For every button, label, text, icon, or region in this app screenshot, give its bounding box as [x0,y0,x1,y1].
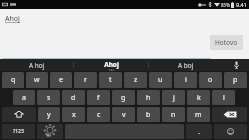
staticText: f [97,93,100,103]
staticText: n [171,110,176,120]
button[interactable]: n [162,107,185,122]
button[interactable]: k [187,90,210,105]
button[interactable]: ?123 [2,124,35,139]
staticText: k [197,93,201,103]
staticText: Hotovo [215,38,238,47]
staticText: Ahoj [5,14,20,24]
button[interactable]: w [26,72,48,88]
staticText: y [47,110,51,120]
button[interactable]: m [187,107,210,122]
button[interactable]: Ahoj [74,59,148,71]
staticText: h [146,93,151,103]
button[interactable]: v [112,107,135,122]
button[interactable]: Emoji [214,124,247,139]
button[interactable]: o [199,72,222,88]
staticText: z [134,75,138,85]
button[interactable]: p [224,72,247,88]
staticText: ?123 [13,128,24,135]
button[interactable]: s [37,90,60,105]
button[interactable]: q [2,72,24,88]
button[interactable]: Settings and comma [37,124,63,139]
staticText: r [84,75,87,85]
staticText: q [11,75,16,85]
staticText: 85% [221,2,230,8]
button[interactable]: e [50,72,72,88]
staticText: d [71,93,76,103]
staticText: t [109,75,112,85]
button[interactable]: Hotovo [210,35,243,50]
button[interactable]: A boj [149,59,223,71]
button[interactable]: Voice input [223,59,249,71]
button[interactable]: z [124,72,147,88]
staticText: A hoj [29,61,45,70]
staticText: g [121,93,126,103]
staticText: u [158,75,163,85]
button[interactable]: a [13,90,35,105]
button[interactable]: c [87,107,110,122]
button[interactable]: x [62,107,85,122]
button[interactable]: f [87,90,110,105]
button[interactable]: l [212,90,235,105]
staticText: A boj [178,61,194,70]
staticText: w [34,75,40,85]
staticText: m [195,110,202,120]
button[interactable]: u [149,72,172,88]
button[interactable]: t [99,72,122,88]
staticText: l [223,93,225,103]
staticText: p [233,75,238,85]
staticText: i [185,75,187,85]
button[interactable]: i [174,72,197,88]
button[interactable]: g [112,90,135,105]
staticText: e [59,75,63,85]
staticText: x [72,110,76,120]
button[interactable]: . [186,124,212,139]
button[interactable]: h [137,90,160,105]
button[interactable]: y [38,107,60,122]
button[interactable]: d [62,90,85,105]
staticText: a [22,93,26,103]
staticText: j [173,93,175,103]
staticText: . [198,127,200,137]
staticText: Ahoj [104,60,119,69]
staticText: v [122,110,126,120]
button[interactable]: b [137,107,160,122]
button[interactable]: j [162,90,185,105]
staticText: c [97,110,101,120]
staticText: s [47,93,51,103]
staticText: 9.41 [236,1,247,8]
button[interactable]: r [74,72,97,88]
staticText: b [146,110,151,120]
button[interactable]: Shift [2,107,36,122]
button[interactable]: A hoj [0,59,73,71]
staticText: o [208,75,213,85]
button[interactable]: Backspace [212,107,247,122]
